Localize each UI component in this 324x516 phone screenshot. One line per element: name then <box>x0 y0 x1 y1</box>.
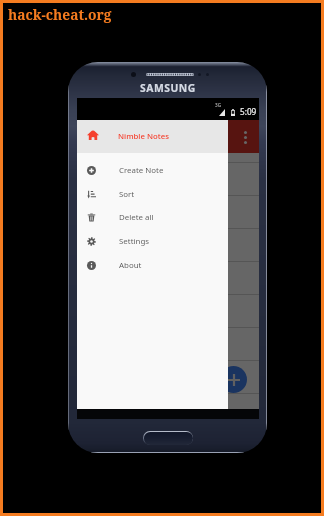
button[interactable]: Settings <box>77 229 228 253</box>
button[interactable] <box>77 328 259 361</box>
button[interactable] <box>77 394 259 410</box>
button[interactable]: Add note <box>220 366 247 393</box>
staticText: Nimble Notes <box>118 131 170 142</box>
button[interactable]: Nimble Notes <box>77 120 228 153</box>
staticText: Sort <box>119 189 135 200</box>
button[interactable] <box>77 361 259 394</box>
button[interactable] <box>77 295 259 328</box>
staticText: hack-cheat.org <box>8 5 112 24</box>
button[interactable]: Sort <box>77 182 228 206</box>
staticText: SAMSUNG <box>140 81 196 95</box>
staticText: Settings <box>119 236 150 247</box>
button[interactable]: Create Note <box>77 158 228 182</box>
button[interactable] <box>77 163 259 196</box>
staticText: 5:09 <box>240 106 257 117</box>
button[interactable]: Delete all <box>77 205 228 229</box>
staticText: Delete all <box>119 212 154 223</box>
button[interactable] <box>77 229 259 262</box>
button[interactable] <box>77 196 259 229</box>
staticText: 3G <box>215 102 221 108</box>
staticText: About <box>119 260 142 271</box>
button[interactable] <box>77 262 259 295</box>
button[interactable]: About <box>77 253 228 277</box>
staticText: Create Note <box>119 165 164 176</box>
button[interactable]: More options <box>240 126 250 148</box>
